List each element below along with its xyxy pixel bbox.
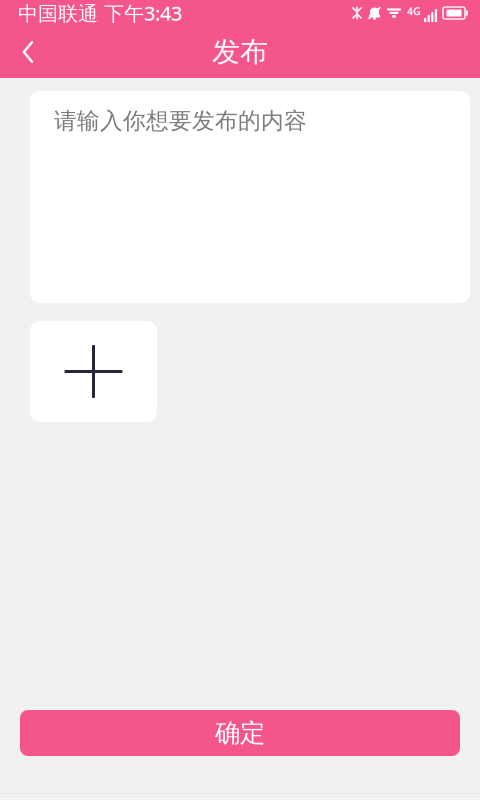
staticText: 4G (407, 4, 421, 18)
button[interactable]: 确定 (20, 710, 460, 756)
button[interactable]: 添加图片 (30, 321, 157, 422)
staticText: 中国联通 下午3:43 (18, 0, 182, 26)
button[interactable]: 返回 (0, 26, 56, 78)
staticText: 确定 (215, 717, 265, 748)
staticText: 发布 (212, 35, 268, 69)
staticText: 请输入你想要发布的内容 (54, 107, 307, 135)
button[interactable]: 内容输入框 (30, 91, 470, 303)
